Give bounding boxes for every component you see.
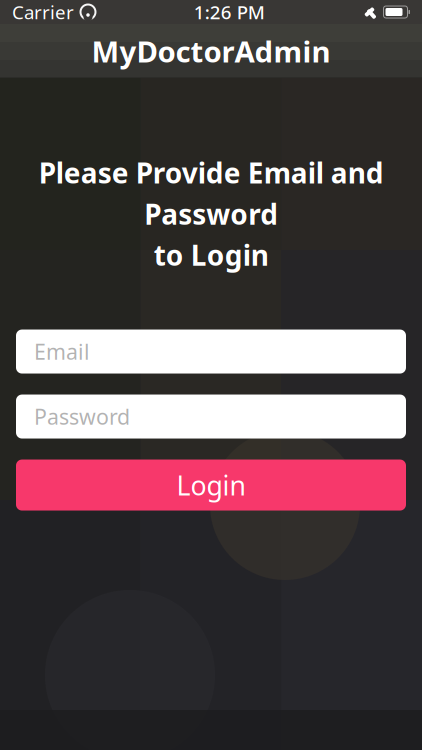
staticText: MyDoctorAdmin	[91, 31, 330, 70]
button[interactable]: Login	[16, 459, 406, 510]
staticText: Password	[34, 402, 130, 431]
staticText: Email	[34, 337, 90, 366]
staticText: Login	[176, 467, 245, 503]
staticText: 1:26 PM	[194, 0, 265, 24]
staticText: Please Provide Email and Password to Log…	[38, 154, 383, 273]
button[interactable]: Password	[16, 394, 406, 438]
staticText: Carrier	[12, 0, 74, 24]
button[interactable]: Email	[16, 329, 406, 373]
